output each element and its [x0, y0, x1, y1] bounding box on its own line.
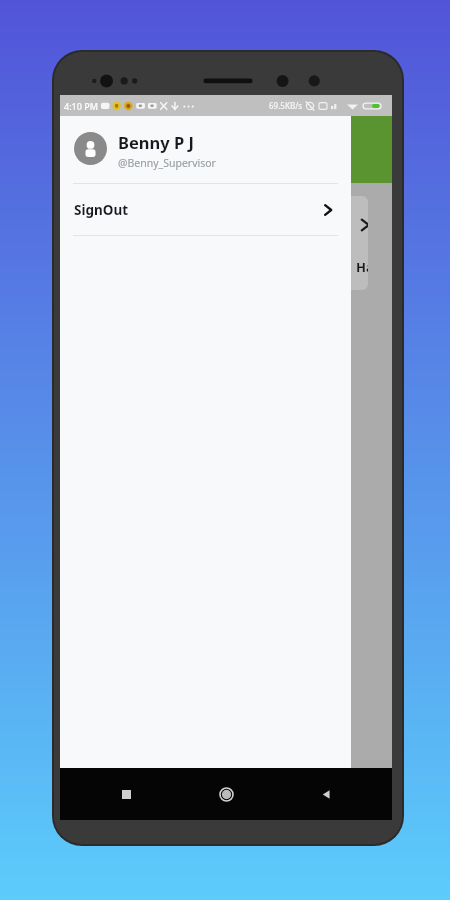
other: Open [355, 215, 368, 235]
staticText: Benny P J [118, 131, 194, 153]
staticText: 69.5KB/s [269, 100, 303, 111]
button[interactable]: Recent apps [109, 777, 143, 811]
button[interactable]: SignOut [60, 184, 351, 235]
button[interactable]: Back [309, 777, 343, 811]
button[interactable]: Open [68, 196, 368, 290]
staticText: SignOut [74, 201, 129, 219]
button[interactable]: Benny P J [74, 130, 337, 169]
button[interactable]: Home [209, 777, 243, 811]
staticText: @Benny_Supervisor [118, 156, 216, 170]
staticText: Ha [356, 258, 368, 276]
staticText: 4:10 PM [64, 100, 98, 112]
